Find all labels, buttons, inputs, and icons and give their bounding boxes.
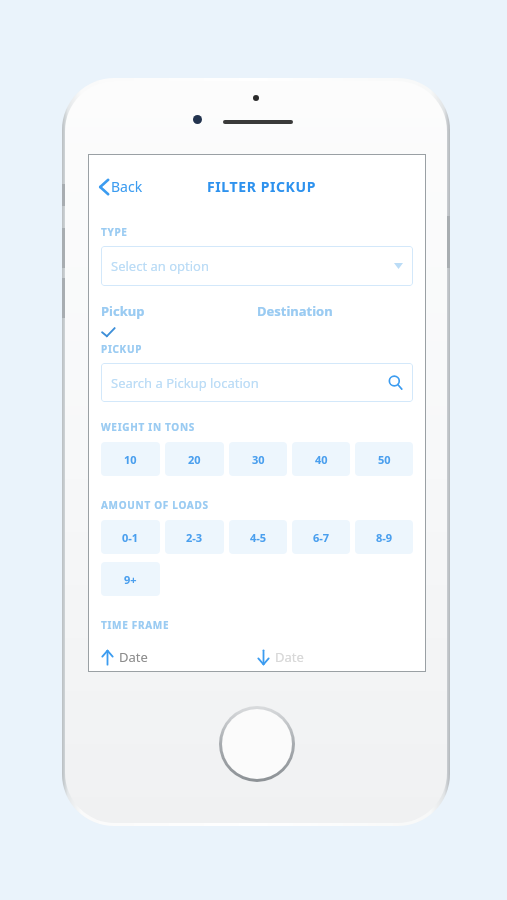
staticText: 40: [315, 452, 328, 467]
staticText: 0-1: [122, 530, 139, 545]
staticText: Destination: [257, 302, 333, 320]
button[interactable]: 10: [101, 442, 160, 476]
button[interactable]: 9+: [101, 562, 160, 596]
staticText: Search a Pickup location: [111, 374, 259, 392]
button[interactable]: 6-7: [292, 520, 350, 554]
staticText: 8-9: [376, 530, 393, 545]
staticText: 2-3: [186, 530, 203, 545]
staticText: 30: [252, 452, 265, 467]
staticText: TYPE: [101, 225, 128, 239]
button[interactable]: Search a Pickup location: [101, 363, 413, 402]
button[interactable]: 20: [165, 442, 224, 476]
button[interactable]: Date: [101, 648, 257, 666]
other: Search: [388, 375, 403, 390]
button[interactable]: 0-1: [101, 520, 160, 554]
button[interactable]: 50: [355, 442, 413, 476]
button[interactable]: 8-9: [355, 520, 413, 554]
staticText: FILTER PICKUP: [207, 177, 316, 196]
button[interactable]: 4-5: [229, 520, 287, 554]
staticText: WEIGHT IN TONS: [101, 420, 195, 434]
button[interactable]: 2-3: [165, 520, 224, 554]
button[interactable]: Destination: [257, 302, 333, 320]
button[interactable]: Date: [257, 648, 304, 666]
staticText: 9+: [124, 572, 137, 587]
staticText: 6-7: [313, 530, 330, 545]
staticText: AMOUNT OF LOADS: [101, 498, 209, 512]
button[interactable]: Back: [95, 173, 147, 200]
staticText: Date: [119, 648, 148, 666]
staticText: Pickup: [101, 302, 145, 320]
other: Pickup selected: [101, 325, 119, 339]
staticText: Back: [111, 177, 143, 196]
button[interactable]: Select an option: [101, 246, 413, 286]
staticText: PICKUP: [101, 342, 143, 356]
staticText: Date: [275, 648, 304, 666]
button[interactable]: Pickup: [101, 302, 257, 320]
staticText: 4-5: [250, 530, 267, 545]
staticText: Select an option: [111, 257, 209, 275]
button[interactable]: 30: [229, 442, 287, 476]
staticText: 20: [188, 452, 201, 467]
staticText: 10: [124, 452, 137, 467]
button[interactable]: 40: [292, 442, 350, 476]
staticText: 50: [378, 452, 391, 467]
staticText: TIME FRAME: [101, 618, 170, 632]
